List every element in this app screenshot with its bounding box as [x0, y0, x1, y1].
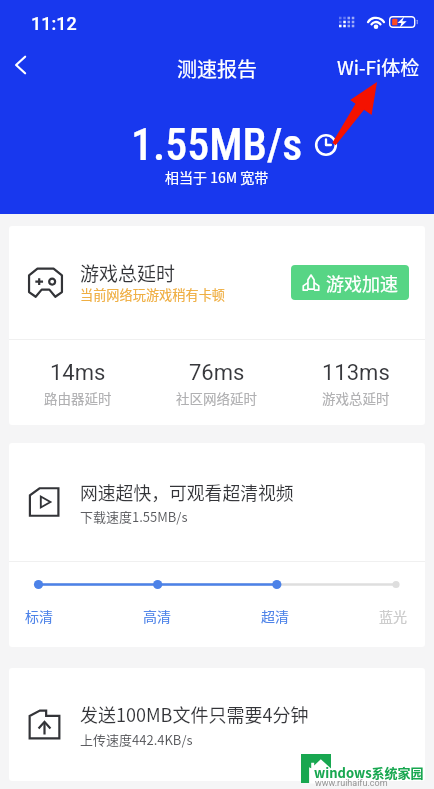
- staticText: Wi-Fi体检: [337, 53, 420, 81]
- staticText: 113ms: [322, 360, 390, 386]
- staticText: windows系统家园: [314, 763, 424, 782]
- staticText: 蓝光: [379, 606, 407, 626]
- staticText: 测速报告: [177, 54, 257, 83]
- button[interactable]: 14ms: [9, 340, 147, 425]
- staticText: 高清: [143, 606, 171, 626]
- staticText: 社区网络延时: [176, 388, 257, 408]
- button[interactable]: 蓝光: [371, 604, 415, 628]
- staticText: 游戏总延时: [322, 388, 390, 408]
- staticText: 1.55MB/s: [131, 119, 303, 171]
- button[interactable]: 高清: [135, 604, 179, 628]
- button[interactable]: 发送100MB文件只需要4分钟: [9, 668, 425, 781]
- button[interactable]: 113ms: [286, 340, 425, 425]
- staticText: 下载速度1.55MB/s: [80, 507, 188, 526]
- button[interactable]: 76ms: [147, 340, 286, 425]
- staticText: 发送100MB文件只需要4分钟: [80, 701, 309, 727]
- button[interactable]: Back: [0, 45, 40, 85]
- staticText: 游戏加速: [326, 270, 398, 296]
- staticText: 14ms: [50, 360, 106, 386]
- staticText: 超清: [261, 606, 289, 626]
- button[interactable]: 超清: [253, 604, 297, 628]
- button[interactable]: 网速超快，可观看超清视频: [9, 443, 425, 561]
- button[interactable]: 游戏加速: [291, 265, 409, 300]
- staticText: www.ruihaifu.com: [315, 778, 388, 789]
- staticText: 11:12: [31, 13, 77, 34]
- staticText: 网速超快，可观看超清视频: [80, 479, 294, 505]
- staticText: 游戏总延时: [80, 259, 176, 287]
- staticText: 相当于 16M 宽带: [165, 167, 269, 187]
- staticText: 上传速度442.4KB/s: [80, 730, 193, 749]
- staticText: 76ms: [189, 360, 245, 386]
- button[interactable]: 游戏总延时: [9, 226, 425, 339]
- staticText: 当前网络玩游戏稍有卡顿: [80, 285, 226, 304]
- staticText: 标清: [25, 606, 53, 626]
- staticText: 路由器延时: [44, 388, 112, 408]
- button[interactable]: Wi-Fi体检: [337, 0, 434, 81]
- button[interactable]: 标清: [17, 604, 61, 628]
